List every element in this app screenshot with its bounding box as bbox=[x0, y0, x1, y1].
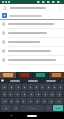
button[interactable]: NONE bbox=[58, 84, 63, 90]
button[interactable]: ENTER bbox=[53, 105, 63, 111]
button[interactable]: NONE bbox=[40, 84, 45, 90]
button[interactable]: NONE bbox=[35, 91, 41, 97]
button[interactable]: More options bbox=[56, 5, 62, 11]
button[interactable]: NONE bbox=[28, 91, 34, 97]
button[interactable]: DOT bbox=[45, 105, 52, 111]
button[interactable]: Back bbox=[2, 5, 8, 11]
button[interactable]: NONE bbox=[49, 91, 55, 97]
button[interactable]: NONE bbox=[48, 98, 54, 104]
button[interactable]: NONE bbox=[15, 98, 20, 104]
button[interactable]: NONE bbox=[52, 84, 57, 90]
button[interactable]: DOTS bbox=[1, 105, 11, 111]
button[interactable]: NONE bbox=[22, 84, 27, 90]
button[interactable]: Home bbox=[27, 115, 37, 117]
button[interactable]: NONE bbox=[15, 84, 21, 90]
button[interactable] bbox=[0, 29, 64, 37]
button[interactable] bbox=[0, 20, 64, 28]
button[interactable]: NONE bbox=[8, 91, 13, 97]
button[interactable]: NONE bbox=[42, 91, 48, 97]
button[interactable]: Image suggestion bbox=[17, 72, 32, 78]
button[interactable]: NONE bbox=[34, 98, 40, 104]
button[interactable]: NONE bbox=[2, 91, 7, 97]
button[interactable]: NONE bbox=[41, 98, 47, 104]
button[interactable]: NONE bbox=[56, 91, 62, 97]
button[interactable]: SHIFT bbox=[1, 98, 8, 104]
button[interactable]: NONE bbox=[21, 91, 27, 97]
button[interactable]: Back bbox=[10, 114, 13, 117]
button[interactable]: NONE bbox=[1, 84, 7, 90]
button[interactable]: NONE bbox=[21, 98, 26, 104]
button[interactable]: NONE bbox=[14, 91, 20, 97]
button[interactable]: DELETE bbox=[55, 98, 63, 104]
button[interactable] bbox=[5, 78, 24, 83]
button[interactable]: Image suggestion bbox=[33, 72, 48, 78]
button[interactable] bbox=[0, 47, 64, 55]
button[interactable]: NONE bbox=[27, 98, 33, 104]
button[interactable]: NONE bbox=[9, 98, 14, 104]
button[interactable]: NONE bbox=[8, 84, 14, 90]
button[interactable]: Open menu bbox=[0, 78, 5, 83]
button[interactable] bbox=[24, 78, 42, 83]
button[interactable]: Image suggestion bbox=[0, 72, 16, 78]
button[interactable]: EMOJI bbox=[12, 105, 19, 111]
button[interactable]: Image suggestion bbox=[49, 72, 64, 78]
button[interactable]: NONE bbox=[34, 84, 39, 90]
button[interactable]: Back bbox=[0, 4, 64, 12]
button[interactable] bbox=[42, 78, 60, 83]
button[interactable]: NONE bbox=[46, 84, 51, 90]
button[interactable] bbox=[0, 56, 64, 64]
button[interactable] bbox=[0, 12, 64, 19]
button[interactable] bbox=[0, 38, 64, 46]
button[interactable]: NONE bbox=[28, 84, 33, 90]
button[interactable]: More suggestions bbox=[60, 79, 64, 83]
button[interactable]: SPACE bbox=[20, 105, 44, 111]
